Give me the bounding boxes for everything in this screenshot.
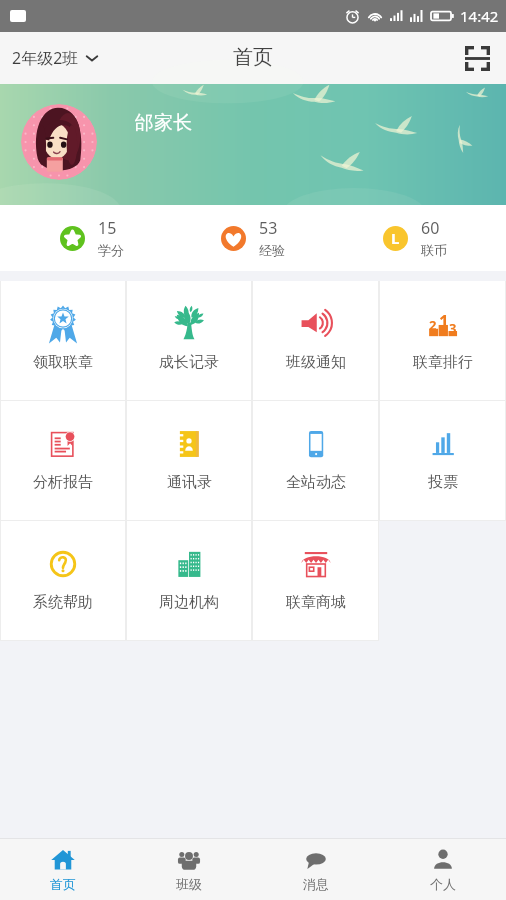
button[interactable]: 53 bbox=[221, 205, 285, 271]
staticText: 经验 bbox=[259, 242, 285, 258]
button[interactable]: 系统帮助 bbox=[0, 521, 126, 641]
staticText: 首页 bbox=[233, 45, 273, 70]
button[interactable]: 1 bbox=[379, 281, 506, 401]
button[interactable]: L bbox=[383, 205, 447, 271]
button[interactable]: 班级通知 bbox=[252, 281, 379, 401]
staticText: 联章排行 bbox=[413, 353, 473, 372]
staticText: 领取联章 bbox=[33, 353, 93, 372]
button[interactable]: 投票 bbox=[379, 401, 506, 521]
staticText: 班级 bbox=[176, 876, 202, 892]
button[interactable]: 成长记录 bbox=[126, 281, 252, 401]
button[interactable]: Scan QR code bbox=[449, 36, 506, 81]
staticText: 60 bbox=[421, 217, 440, 239]
button[interactable]: 领取联章 bbox=[0, 281, 126, 401]
button[interactable]: 首页 bbox=[0, 839, 126, 900]
button[interactable]: 2年级2班 bbox=[0, 39, 111, 77]
staticText: 学分 bbox=[98, 242, 124, 258]
button[interactable]: 通讯录 bbox=[126, 401, 252, 521]
staticText: 成长记录 bbox=[159, 353, 219, 372]
staticText: 邰家长 bbox=[135, 111, 192, 135]
button[interactable]: 消息 bbox=[252, 839, 379, 900]
staticText: 首页 bbox=[50, 876, 76, 892]
staticText: 分析报告 bbox=[33, 473, 93, 492]
staticText: 全站动态 bbox=[286, 473, 346, 492]
staticText: 53 bbox=[259, 217, 278, 239]
button[interactable]: 分析报告 bbox=[0, 401, 126, 521]
staticText: 3 bbox=[449, 319, 457, 337]
button[interactable]: 全站动态 bbox=[252, 401, 379, 521]
staticText: L bbox=[391, 228, 400, 248]
button[interactable]: 联章商城 bbox=[252, 521, 379, 641]
staticText: 联章商城 bbox=[286, 593, 346, 612]
button[interactable]: 15 bbox=[60, 205, 124, 271]
staticText: 个人 bbox=[430, 876, 456, 892]
button[interactable]: 周边机构 bbox=[126, 521, 252, 641]
staticText: 2 bbox=[429, 316, 437, 334]
staticText: 14:42 bbox=[460, 6, 499, 26]
staticText: 投票 bbox=[428, 473, 458, 492]
staticText: 系统帮助 bbox=[33, 593, 93, 612]
staticText: 联币 bbox=[421, 242, 447, 258]
button[interactable] bbox=[21, 104, 97, 180]
staticText: 通讯录 bbox=[167, 473, 212, 492]
staticText: 班级通知 bbox=[286, 353, 346, 372]
staticText: 消息 bbox=[303, 876, 329, 892]
staticText: 15 bbox=[98, 217, 117, 239]
button[interactable]: 班级 bbox=[126, 839, 252, 900]
staticText: 周边机构 bbox=[159, 593, 219, 612]
staticText: 2年级2班 bbox=[12, 47, 79, 69]
staticText: 1 bbox=[439, 310, 449, 333]
button[interactable]: 个人 bbox=[379, 839, 506, 900]
